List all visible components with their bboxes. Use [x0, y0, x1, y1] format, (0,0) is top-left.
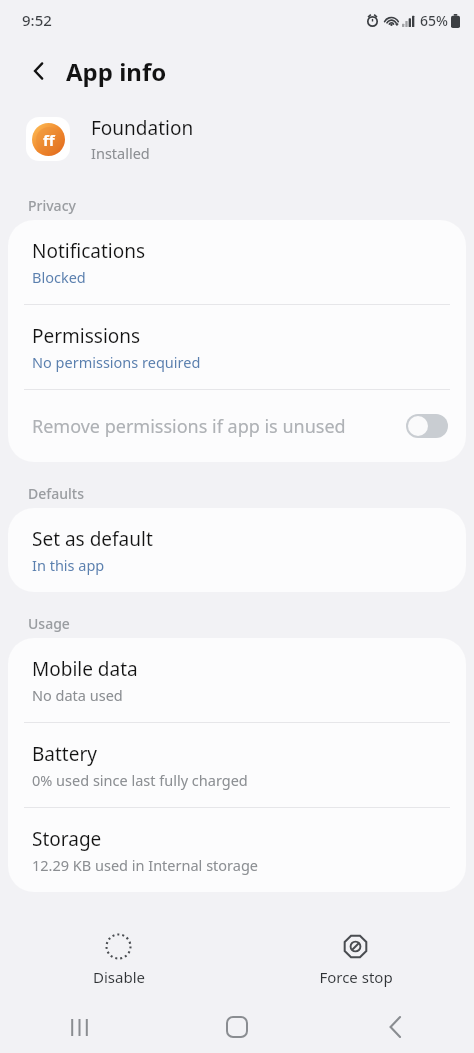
button[interactable]: Permissions	[8, 305, 466, 389]
staticText: ff	[43, 130, 55, 150]
button[interactable]: Mobile data	[8, 638, 466, 722]
button[interactable]: Notifications	[8, 220, 466, 304]
staticText: Foundation	[91, 115, 194, 141]
staticText: 65%	[420, 11, 448, 30]
staticText: 12.29 KB used in Internal storage	[32, 855, 259, 875]
staticText: App info	[66, 55, 167, 88]
staticText: Defaults	[28, 484, 84, 503]
button[interactable]: Battery	[8, 723, 466, 807]
staticText: 0% used since last fully charged	[32, 770, 248, 790]
button[interactable]: ff	[0, 102, 474, 176]
button[interactable]: Disable	[0, 933, 237, 987]
button[interactable]: Remove permissions if app is unused	[8, 390, 466, 462]
staticText: Remove permissions if app is unused	[32, 414, 398, 439]
staticText: Installed	[91, 143, 150, 163]
staticText: Battery	[32, 741, 97, 767]
staticText: Force stop	[319, 967, 393, 987]
staticText: No data used	[32, 685, 123, 705]
button[interactable]: Storage	[8, 808, 466, 892]
button[interactable]: Home	[158, 1001, 316, 1053]
staticText: Disable	[93, 967, 145, 987]
staticText: Set as default	[32, 526, 153, 552]
staticText: Blocked	[32, 267, 86, 287]
staticText: Storage	[32, 826, 102, 852]
button[interactable]: Recents	[0, 1001, 158, 1053]
button[interactable]: Force stop	[237, 933, 474, 987]
button[interactable]: Back	[22, 54, 56, 88]
staticText: Permissions	[32, 323, 141, 349]
staticText: Privacy	[28, 196, 76, 215]
staticText: 9:52	[22, 10, 52, 30]
button[interactable]: Set as default	[8, 508, 466, 592]
staticText: Usage	[28, 614, 70, 633]
button[interactable]: Back	[316, 1001, 474, 1053]
staticText: No permissions required	[32, 352, 201, 372]
staticText: In this app	[32, 555, 105, 575]
staticText: Notifications	[32, 238, 146, 264]
staticText: Mobile data	[32, 656, 138, 682]
